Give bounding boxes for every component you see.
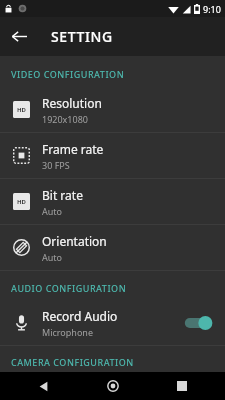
staticText: 1920x1080 bbox=[42, 113, 88, 125]
staticText: 30 FPS bbox=[42, 159, 70, 171]
staticText: AUDIO CONFIGURATION bbox=[11, 282, 127, 294]
button[interactable]: HD bbox=[0, 87, 225, 132]
button[interactable]: Toggle Record Audio bbox=[183, 315, 213, 331]
button[interactable]: Home bbox=[87, 372, 139, 400]
staticText: VIDEO CONFIGURATION bbox=[11, 68, 125, 80]
staticText: Frame rate bbox=[42, 141, 104, 157]
button[interactable]: Record Audio bbox=[0, 300, 225, 345]
staticText: SETTING bbox=[51, 27, 113, 46]
button[interactable]: Back bbox=[0, 17, 39, 56]
staticText: Bit rate bbox=[42, 187, 83, 203]
staticText: Record Audio bbox=[42, 308, 118, 324]
button[interactable]: Frame rate bbox=[0, 133, 225, 178]
staticText: HD bbox=[17, 106, 26, 114]
button[interactable]: HD bbox=[0, 179, 225, 224]
button[interactable]: Recent apps bbox=[156, 372, 208, 400]
staticText: 9:10 bbox=[203, 3, 221, 15]
staticText: Orientation bbox=[42, 233, 107, 249]
staticText: Auto bbox=[42, 205, 63, 217]
staticText: Resolution bbox=[42, 95, 102, 111]
staticText: HD bbox=[17, 198, 26, 206]
button[interactable]: Orientation bbox=[0, 225, 225, 270]
staticText: Auto bbox=[42, 251, 63, 263]
staticText: Microphone bbox=[42, 326, 93, 338]
button[interactable]: Back bbox=[17, 372, 69, 400]
staticText: CAMERA CONFIGURATION bbox=[11, 356, 134, 366]
